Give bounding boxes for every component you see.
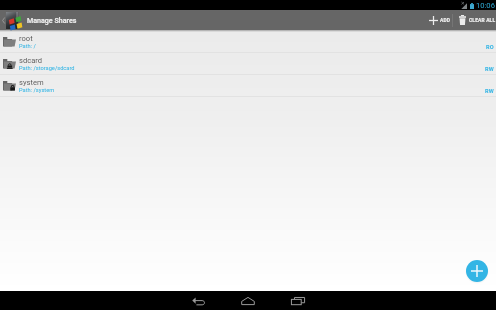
button[interactable]: Add share <box>466 260 488 282</box>
staticText: root <box>19 34 33 43</box>
staticText: Path: /system <box>19 87 55 94</box>
button[interactable]: Navigate up <box>0 10 77 30</box>
staticText: 10:06 <box>476 1 495 10</box>
staticText: RW <box>485 66 494 73</box>
button[interactable]: ADD <box>427 10 453 30</box>
staticText: Path: /storage/sdcard <box>19 65 75 72</box>
staticText: RW <box>485 88 494 95</box>
button[interactable]: CLEAR ALL <box>457 10 496 30</box>
button[interactable]: Home <box>230 291 266 310</box>
staticText: ADD <box>440 17 451 23</box>
staticText: CLEAR ALL <box>469 17 496 23</box>
staticText: Manage Shares <box>27 16 77 24</box>
staticText: Path: / <box>19 43 36 50</box>
button[interactable]: Recent apps <box>280 291 316 310</box>
button[interactable]: system <box>0 75 496 96</box>
button[interactable]: sdcard <box>0 53 496 74</box>
staticText: system <box>19 78 44 87</box>
button[interactable]: root <box>0 31 496 52</box>
button[interactable]: Back <box>180 291 216 310</box>
staticText: RO <box>486 44 494 51</box>
staticText: sdcard <box>19 56 43 65</box>
